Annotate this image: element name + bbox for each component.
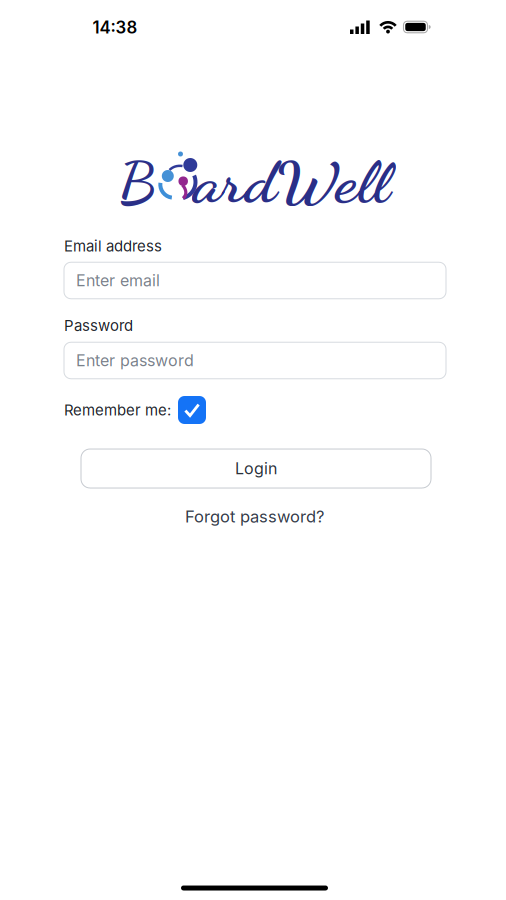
- staticText: ardWell: [204, 149, 379, 217]
- staticText: Email address: [64, 237, 162, 255]
- button[interactable]: Enter password: [64, 342, 446, 379]
- staticText: B: [118, 149, 155, 217]
- staticText: Login: [235, 459, 277, 478]
- button[interactable]: Enter email: [64, 262, 446, 299]
- staticText: Remember me:: [64, 401, 171, 419]
- staticText: Password: [64, 316, 133, 335]
- staticText: Enter password: [76, 351, 194, 370]
- button[interactable]: Forgot password?: [185, 506, 324, 526]
- button[interactable]: Remember me: [178, 396, 206, 424]
- button[interactable]: Login: [81, 449, 431, 488]
- staticText: Forgot password?: [185, 506, 324, 526]
- staticText: 14:38: [92, 17, 137, 38]
- staticText: Enter email: [76, 271, 160, 290]
